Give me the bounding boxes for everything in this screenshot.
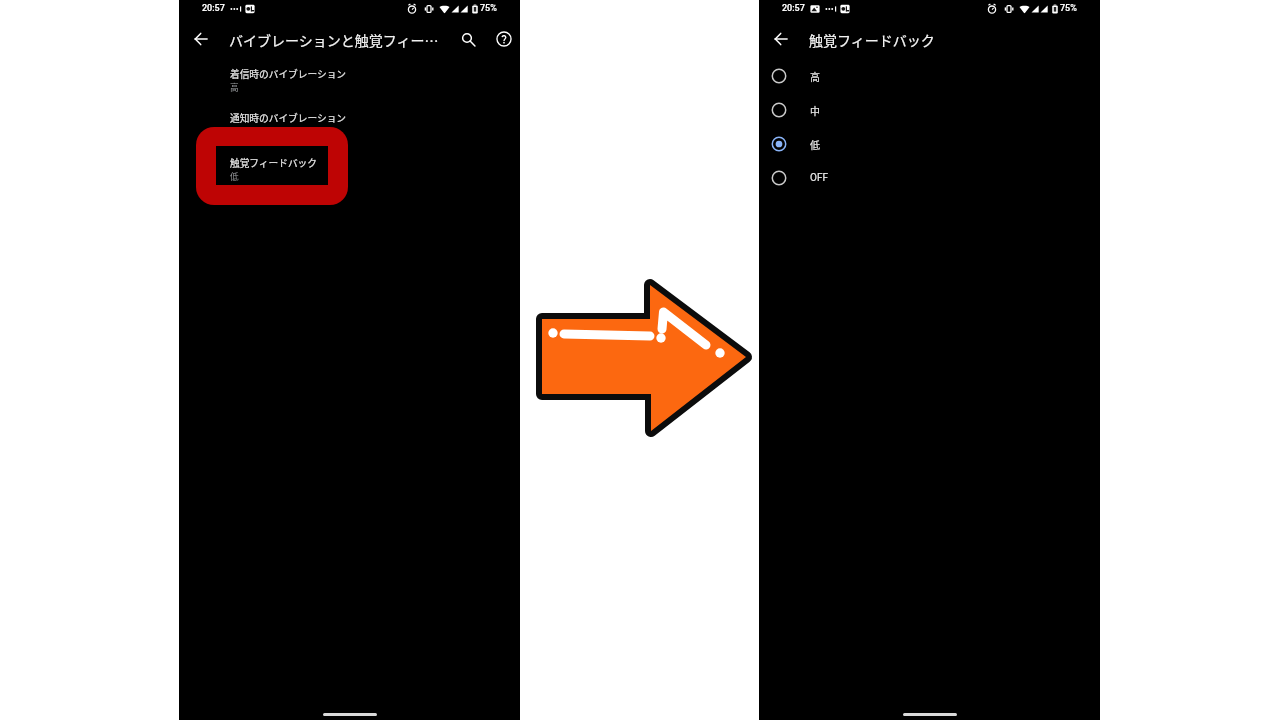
button[interactable]: 中 — [759, 96, 1100, 124]
staticText: 中 — [810, 103, 820, 117]
button[interactable]: Search — [456, 27, 480, 51]
button[interactable]: 通知時のバイブレーション — [179, 102, 520, 146]
staticText: 75% — [480, 3, 497, 14]
staticText: 高 — [810, 69, 820, 83]
button[interactable]: OFF — [759, 164, 1100, 192]
staticText: 着信時のバイブレーション — [230, 67, 347, 81]
staticText: 20:57 — [202, 3, 225, 14]
staticText: 20:57 — [782, 3, 805, 14]
staticText: 低 — [810, 137, 820, 151]
button[interactable]: 着信時のバイブレーション — [179, 58, 520, 102]
button[interactable]: Help — [492, 27, 516, 51]
button[interactable]: 低 — [759, 130, 1100, 158]
staticText: 高 — [230, 81, 239, 93]
staticText: 75% — [1060, 3, 1077, 14]
staticText: 触覚フィードバック — [230, 156, 317, 170]
button[interactable]: 触覚フィードバック — [216, 146, 328, 185]
staticText: 通知時のバイブレーション — [230, 111, 347, 125]
staticText: 低 — [230, 170, 239, 182]
button[interactable]: 高 — [759, 62, 1100, 90]
staticText: 触覚フィードバック — [809, 30, 935, 50]
staticText: OFF — [810, 172, 828, 184]
staticText: バイブレーションと触覚フィー… — [229, 30, 439, 50]
button[interactable]: Back — [769, 27, 793, 51]
button[interactable]: Back — [189, 27, 213, 51]
